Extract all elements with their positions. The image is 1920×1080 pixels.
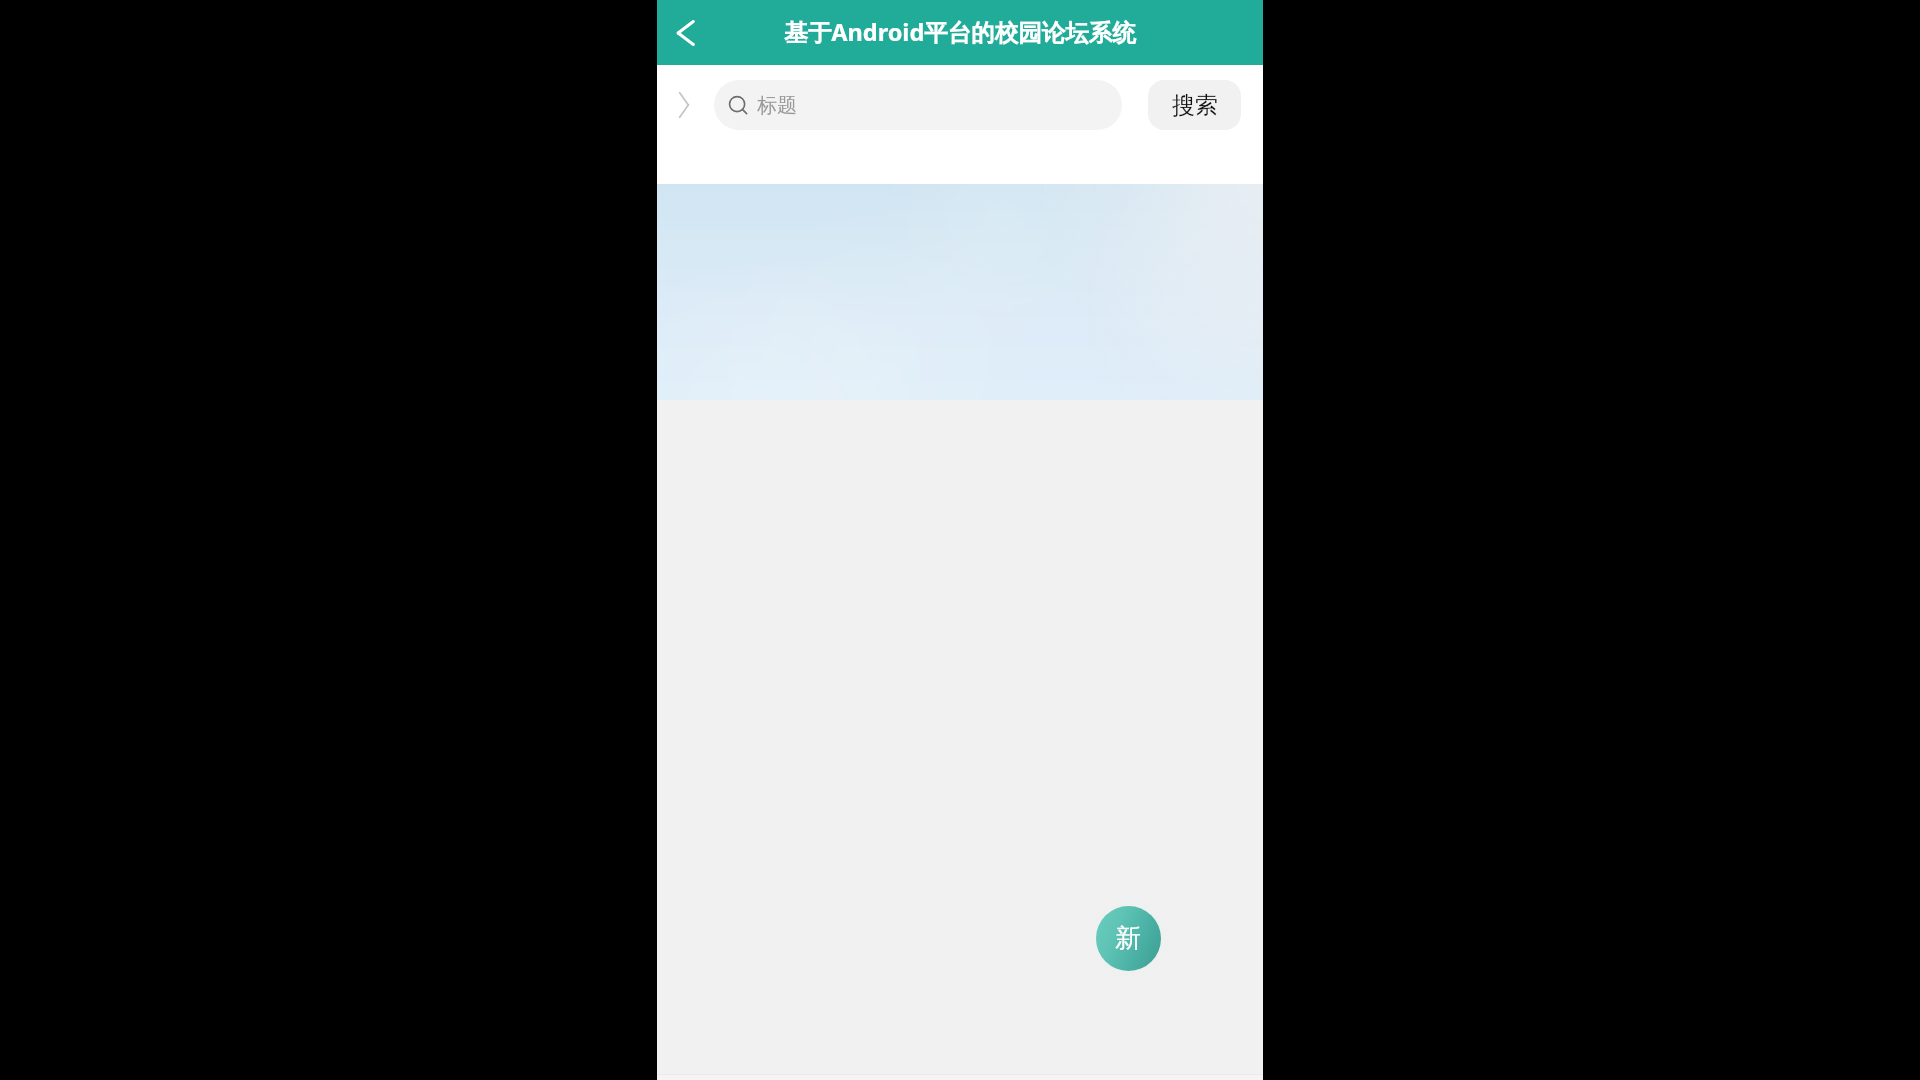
button[interactable]: Expand filter (671, 80, 705, 130)
button[interactable]: 标题 (714, 80, 1122, 130)
button[interactable]: 搜索 (1148, 80, 1241, 130)
button[interactable]: Back (657, 0, 713, 65)
button[interactable]: New post (1096, 906, 1161, 971)
staticText: 标题 (757, 93, 797, 118)
staticText: 基于Android平台的校园论坛系统 (784, 16, 1136, 48)
staticText: 新 (1115, 922, 1141, 955)
staticText: 搜索 (1172, 91, 1218, 120)
